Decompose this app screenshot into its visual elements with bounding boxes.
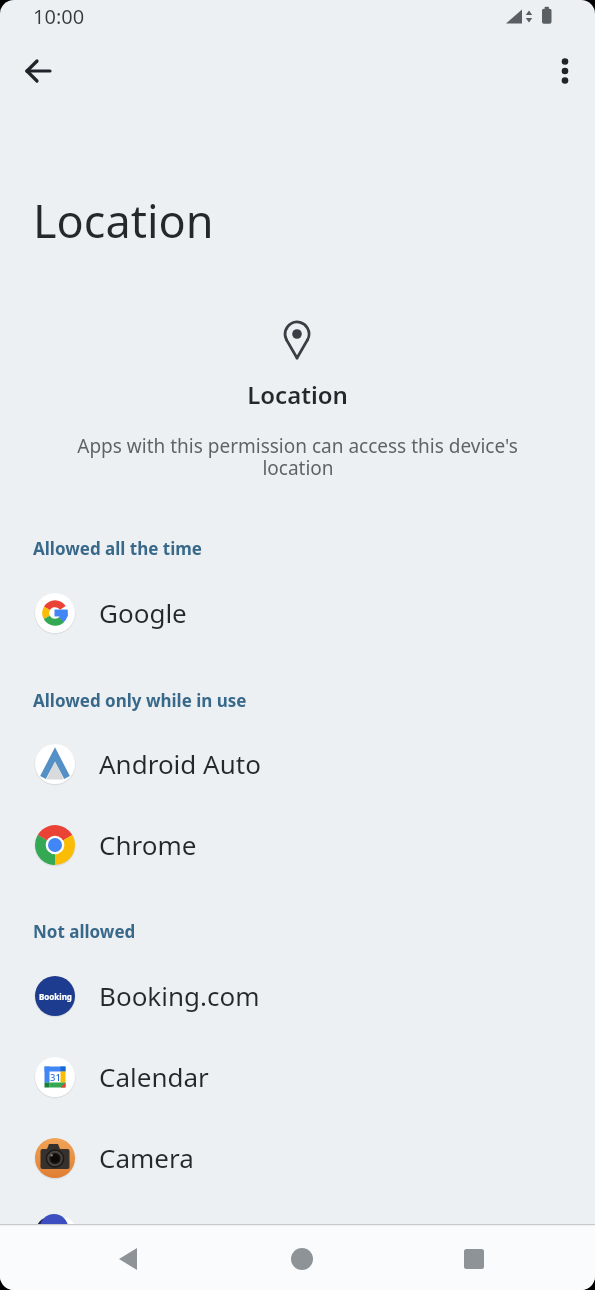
staticText: Allowed all the time — [33, 537, 202, 560]
staticText: Apps with this permission can access thi… — [77, 433, 518, 459]
staticText: Location — [33, 190, 214, 251]
staticText: Google — [99, 595, 187, 630]
staticText: Location — [247, 378, 348, 411]
staticText: 10:00 — [33, 3, 85, 30]
staticText: Android Auto — [99, 746, 261, 781]
staticText: Chrome — [99, 827, 197, 862]
staticText: Not allowed — [33, 920, 136, 943]
staticText: Booking.com — [99, 978, 260, 1013]
staticText: Booking — [39, 991, 72, 1002]
staticText: Camera — [99, 1140, 194, 1175]
staticText: 31 — [50, 1071, 61, 1084]
staticText: location — [262, 455, 334, 481]
staticText: Calendar — [99, 1059, 209, 1094]
staticText: Allowed only while in use — [33, 689, 247, 712]
